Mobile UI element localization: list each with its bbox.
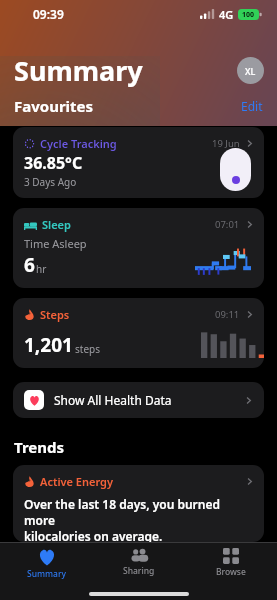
staticText: XL <box>245 65 256 77</box>
staticText: 19 Jun <box>212 137 240 150</box>
button[interactable]: Summary <box>0 543 93 588</box>
staticText: Cycle Tracking <box>40 136 117 151</box>
staticText: Trends <box>14 437 65 457</box>
button[interactable]: Profile <box>237 57 264 84</box>
button[interactable]: Sharing <box>93 543 185 588</box>
staticText: Over the last 18 days, you burned more k… <box>24 496 253 542</box>
staticText: Time Asleep <box>24 236 87 251</box>
staticText: 36.85°C <box>24 152 83 174</box>
button[interactable]: Steps <box>13 298 264 368</box>
staticText: 09:39 <box>33 6 64 22</box>
button[interactable]: Sleep <box>13 208 264 288</box>
staticText: Sleep <box>42 217 71 232</box>
staticText: Show All Health Data <box>54 392 172 408</box>
staticText: Favourites <box>14 96 94 116</box>
button[interactable]: Show All Health Data <box>13 382 264 418</box>
staticText: 1,201 <box>24 332 73 358</box>
staticText: 3 Days Ago <box>24 175 77 189</box>
staticText: hr <box>36 262 47 276</box>
staticText: steps <box>75 342 100 356</box>
staticText: 07:01 <box>215 218 240 231</box>
button[interactable]: Active Energy <box>13 465 264 542</box>
button[interactable]: Browse <box>185 543 277 588</box>
staticText: 6 <box>24 252 35 278</box>
button[interactable]: Edit <box>241 98 263 114</box>
staticText: Summary <box>14 52 143 89</box>
staticText: 4G <box>219 7 234 22</box>
staticText: Steps <box>40 307 70 322</box>
button[interactable]: Cycle Tracking <box>13 127 264 198</box>
staticText: Summary <box>27 568 67 580</box>
staticText: Edit <box>241 98 263 114</box>
staticText: 100 <box>242 10 255 20</box>
staticText: 09:11 <box>215 308 240 321</box>
staticText: Browse <box>216 566 246 578</box>
staticText: Sharing <box>123 565 155 577</box>
staticText: Active Energy <box>40 474 113 489</box>
